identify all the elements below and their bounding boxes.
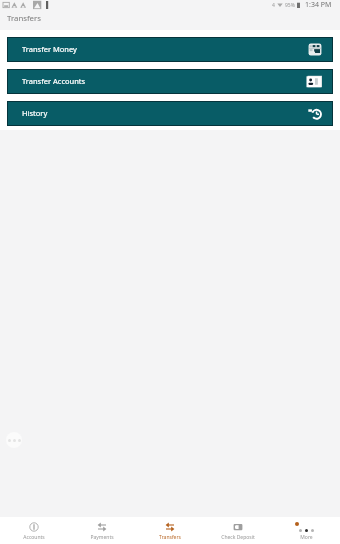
- button[interactable]: Assistant: [6, 432, 22, 448]
- button[interactable]: Transfer Accounts: [7, 69, 333, 94]
- staticText: History: [22, 108, 48, 118]
- staticText: Transfer Money: [22, 44, 77, 54]
- button[interactable]: Payments: [68, 517, 136, 544]
- staticText: Check Deposit: [221, 534, 255, 541]
- button[interactable]: Accounts: [0, 517, 68, 544]
- button[interactable]: Transfer Money: [7, 37, 333, 62]
- staticText: Payments: [90, 534, 114, 541]
- button[interactable]: History: [7, 101, 333, 126]
- staticText: 95%: [285, 2, 295, 9]
- staticText: 1:34 PM: [305, 0, 332, 10]
- staticText: Transfers: [159, 534, 181, 541]
- button[interactable]: More: [272, 517, 340, 544]
- button[interactable]: Transfers: [136, 517, 204, 544]
- staticText: Transfer Accounts: [22, 76, 86, 86]
- staticText: Accounts: [23, 534, 45, 541]
- staticText: Transfers: [7, 13, 41, 24]
- staticText: 4: [272, 2, 275, 9]
- button[interactable]: Check Deposit: [204, 517, 272, 544]
- staticText: More: [300, 534, 313, 541]
